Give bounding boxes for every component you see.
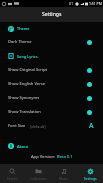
- staticText: Show Translation: [8, 109, 87, 115]
- button[interactable]: Settings: [77, 164, 103, 183]
- button[interactable]: Search: [0, 164, 25, 183]
- staticText: Show Synonyms: [8, 95, 87, 101]
- staticText: Search: [7, 176, 18, 180]
- staticText: [default]: [30, 124, 46, 129]
- staticText: Show Original Script: [8, 67, 87, 73]
- button[interactable]: Show Original Script: [0, 63, 103, 77]
- staticText: Beta 0.1: [57, 154, 73, 160]
- staticText: A: [89, 121, 94, 131]
- staticText: Show English Verse: [8, 81, 87, 87]
- button[interactable]: Collections: [25, 164, 51, 183]
- button[interactable]: Music: [51, 164, 77, 183]
- staticText: Theme: [17, 26, 30, 31]
- button[interactable]: Show English Verse: [0, 77, 103, 91]
- staticText: Font Size: [8, 123, 26, 129]
- staticText: Settings: [42, 11, 62, 18]
- staticText: BT: [69, 1, 74, 6]
- button[interactable]: Font Size: [0, 119, 103, 133]
- staticText: 1:51 PM: [89, 1, 102, 6]
- staticText: About: [17, 144, 28, 149]
- button[interactable]: Show Translation: [0, 105, 103, 119]
- staticText: Settings: [84, 176, 97, 180]
- button[interactable]: Dark Theme: [0, 35, 103, 49]
- staticText: Dark Theme: [8, 39, 87, 45]
- button[interactable]: Show Synonyms: [0, 91, 103, 105]
- staticText: App Version:: [31, 154, 57, 160]
- staticText: Collections: [30, 176, 47, 180]
- staticText: Music: [59, 176, 69, 180]
- staticText: Song Lyrics: [17, 54, 38, 59]
